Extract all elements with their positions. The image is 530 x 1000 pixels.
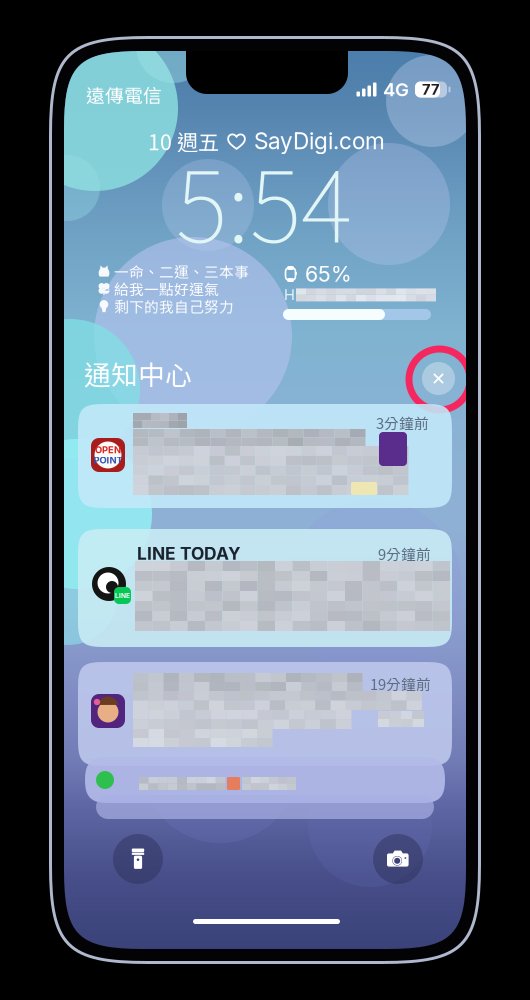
staticText: 遠傳電信 bbox=[86, 81, 162, 108]
button[interactable]: 19分鐘前 bbox=[78, 662, 452, 766]
staticText: 通知中心 bbox=[84, 354, 192, 393]
staticText: POINT bbox=[93, 454, 122, 466]
staticText: 9分鐘前 bbox=[378, 543, 431, 564]
staticText: OPEN bbox=[95, 444, 121, 455]
button[interactable]: LINE bbox=[78, 529, 452, 647]
staticText: 10 週五 bbox=[148, 126, 219, 156]
staticText: SayDigi.com bbox=[254, 127, 385, 155]
staticText: H bbox=[284, 286, 295, 304]
button[interactable]: Flashlight bbox=[113, 834, 163, 884]
button[interactable]: OPEN bbox=[78, 404, 452, 508]
button[interactable]: Camera bbox=[373, 834, 423, 884]
staticText: 3分鐘前 bbox=[376, 412, 429, 433]
staticText: 5:54 bbox=[176, 128, 352, 271]
staticText: 65% bbox=[305, 261, 352, 287]
button[interactable] bbox=[85, 757, 445, 803]
staticText: 一命、二運、三本事 bbox=[114, 260, 249, 282]
staticText: 77 bbox=[422, 81, 440, 98]
button[interactable]: Clear notifications bbox=[422, 362, 455, 395]
staticText: 給我一點好運氣 bbox=[114, 278, 219, 299]
staticText: 19分鐘前 bbox=[370, 673, 431, 694]
staticText: LINE TODAY bbox=[137, 543, 241, 564]
staticText: 4G bbox=[383, 78, 409, 101]
staticText: LINE bbox=[115, 591, 130, 600]
staticText: 剩下的我自己努力 bbox=[114, 295, 234, 317]
